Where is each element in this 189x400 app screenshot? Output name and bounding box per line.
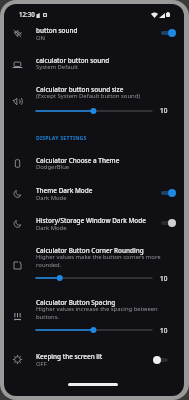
button[interactable]: Toggle — [160, 187, 176, 199]
button[interactable] — [4, 237, 184, 290]
staticText: Calculator Button Spacing — [36, 298, 116, 307]
button[interactable] — [4, 126, 184, 146]
staticText: Keeping the screen lit — [36, 352, 103, 361]
button[interactable] — [4, 147, 184, 177]
button[interactable] — [4, 77, 184, 124]
staticText: calculator button sound — [36, 56, 110, 65]
button[interactable]: Toggle — [160, 27, 176, 39]
button[interactable]: Toggle — [160, 217, 176, 229]
staticText: 10 — [160, 274, 168, 283]
staticText: DodgerBlue — [36, 163, 70, 171]
button[interactable] — [4, 177, 184, 207]
staticText: Calculator button sound size — [36, 85, 124, 94]
staticText: OFF — [36, 360, 47, 368]
staticText: Calculator Choose a Theme — [36, 156, 120, 165]
staticText: Higher values make the button corners mo… — [36, 253, 167, 268]
staticText: ON — [36, 34, 46, 42]
staticText: 10 — [160, 106, 168, 115]
staticText: Theme Dark Mode — [36, 186, 93, 195]
staticText: System Default — [36, 63, 78, 71]
button[interactable] — [4, 290, 184, 342]
button[interactable] — [4, 18, 184, 47]
button[interactable] — [4, 47, 184, 77]
staticText: 10 — [160, 326, 168, 335]
button[interactable]: Slider — [32, 323, 156, 337]
staticText: Dark Mode — [36, 224, 67, 232]
button[interactable]: Toggle — [153, 354, 169, 366]
staticText: Higher values increase the spacing betwe… — [36, 305, 167, 320]
staticText: Dark Mode — [36, 194, 67, 202]
button[interactable] — [4, 207, 184, 237]
staticText: 12:30 — [19, 10, 35, 18]
button[interactable] — [4, 342, 184, 372]
staticText: (Except System Default button sound) — [36, 92, 141, 100]
button[interactable]: Slider — [32, 271, 156, 285]
button[interactable]: Slider — [32, 104, 156, 118]
staticText: History/Storage Window Dark Mode — [36, 216, 146, 225]
staticText: DISPLAY SETTINGS — [36, 134, 87, 141]
staticText: button sound — [36, 26, 78, 35]
staticText: Calculator Button Corner Rounding — [36, 246, 144, 255]
